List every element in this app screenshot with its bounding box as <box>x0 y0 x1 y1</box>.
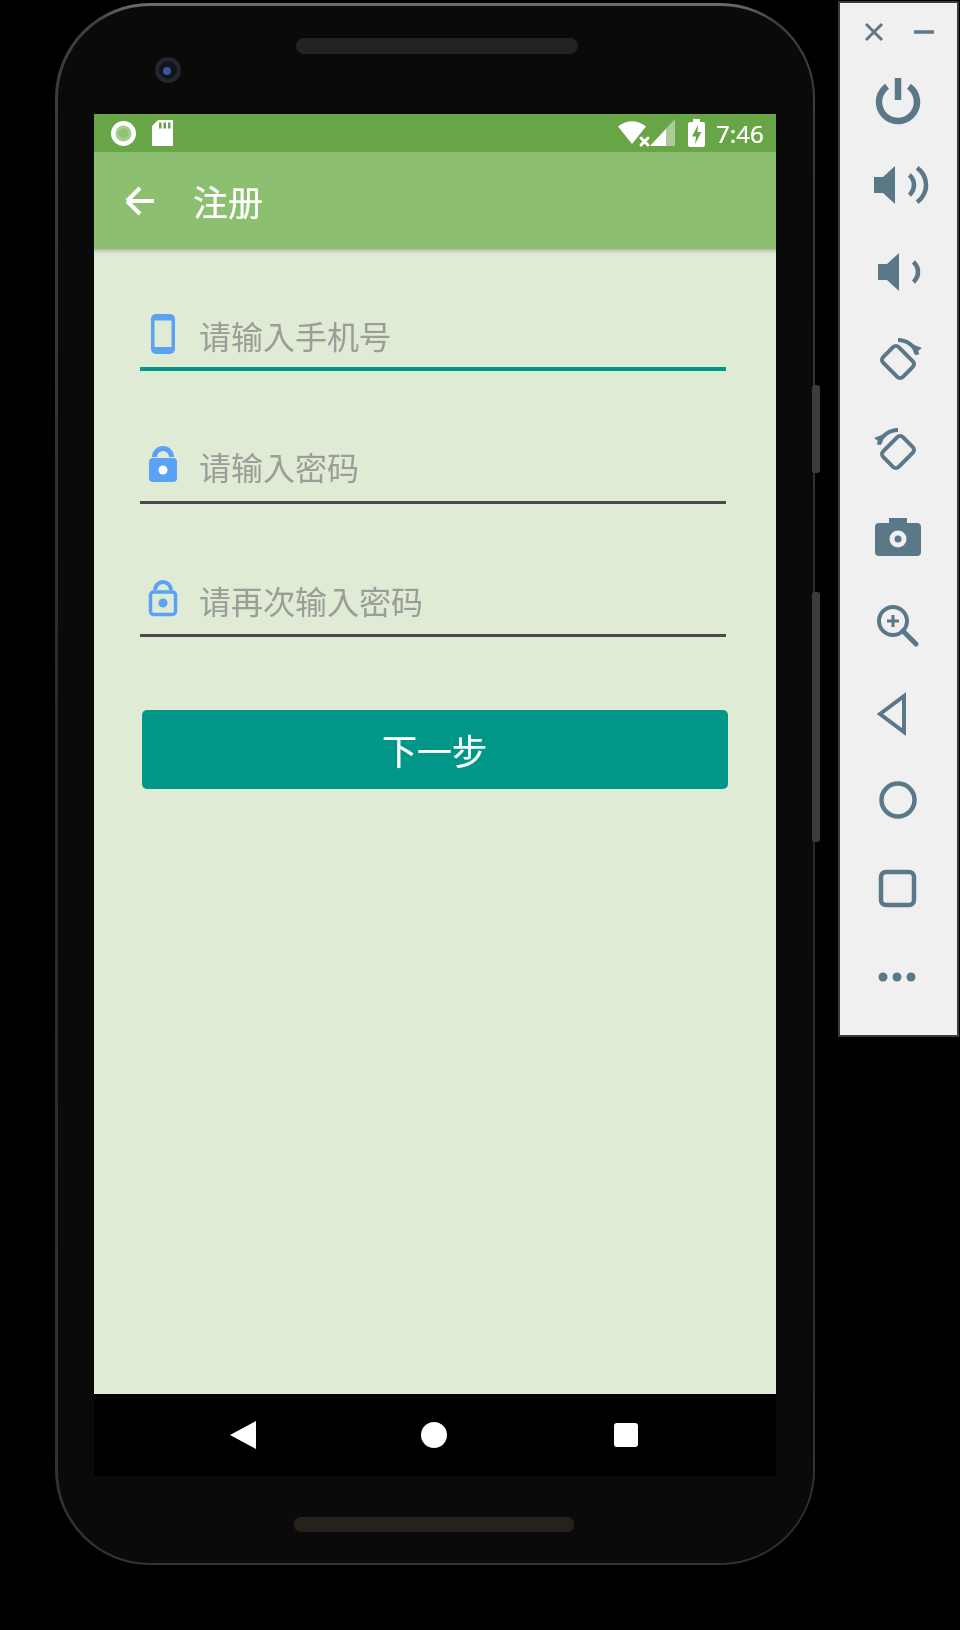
button[interactable] <box>874 426 922 474</box>
staticText: 注册 <box>193 175 264 226</box>
button[interactable] <box>876 694 912 734</box>
button[interactable] <box>421 1422 447 1448</box>
button[interactable] <box>876 78 920 122</box>
button[interactable]: 请再次输入密码 <box>140 565 726 639</box>
staticText: 请输入密码 <box>199 443 360 489</box>
button[interactable] <box>914 30 934 34</box>
button[interactable] <box>879 781 917 819</box>
staticText: 7:46 <box>716 117 764 150</box>
button[interactable]: 请输入手机号 <box>140 300 726 374</box>
button[interactable] <box>880 871 916 907</box>
button[interactable] <box>874 164 918 206</box>
button[interactable] <box>875 518 921 556</box>
button[interactable]: 请输入密码 <box>140 431 726 505</box>
button[interactable] <box>230 1421 256 1449</box>
staticText: 请输入手机号 <box>199 312 392 358</box>
button[interactable]: 下一步 <box>142 710 728 789</box>
button[interactable] <box>876 604 920 648</box>
button[interactable] <box>874 252 916 292</box>
staticText: 下一步 <box>382 724 488 775</box>
button[interactable] <box>120 183 160 219</box>
button[interactable] <box>866 24 882 40</box>
button[interactable] <box>614 1423 638 1447</box>
button[interactable] <box>874 336 922 384</box>
staticText: 请再次输入密码 <box>199 577 424 623</box>
button[interactable] <box>878 972 918 982</box>
